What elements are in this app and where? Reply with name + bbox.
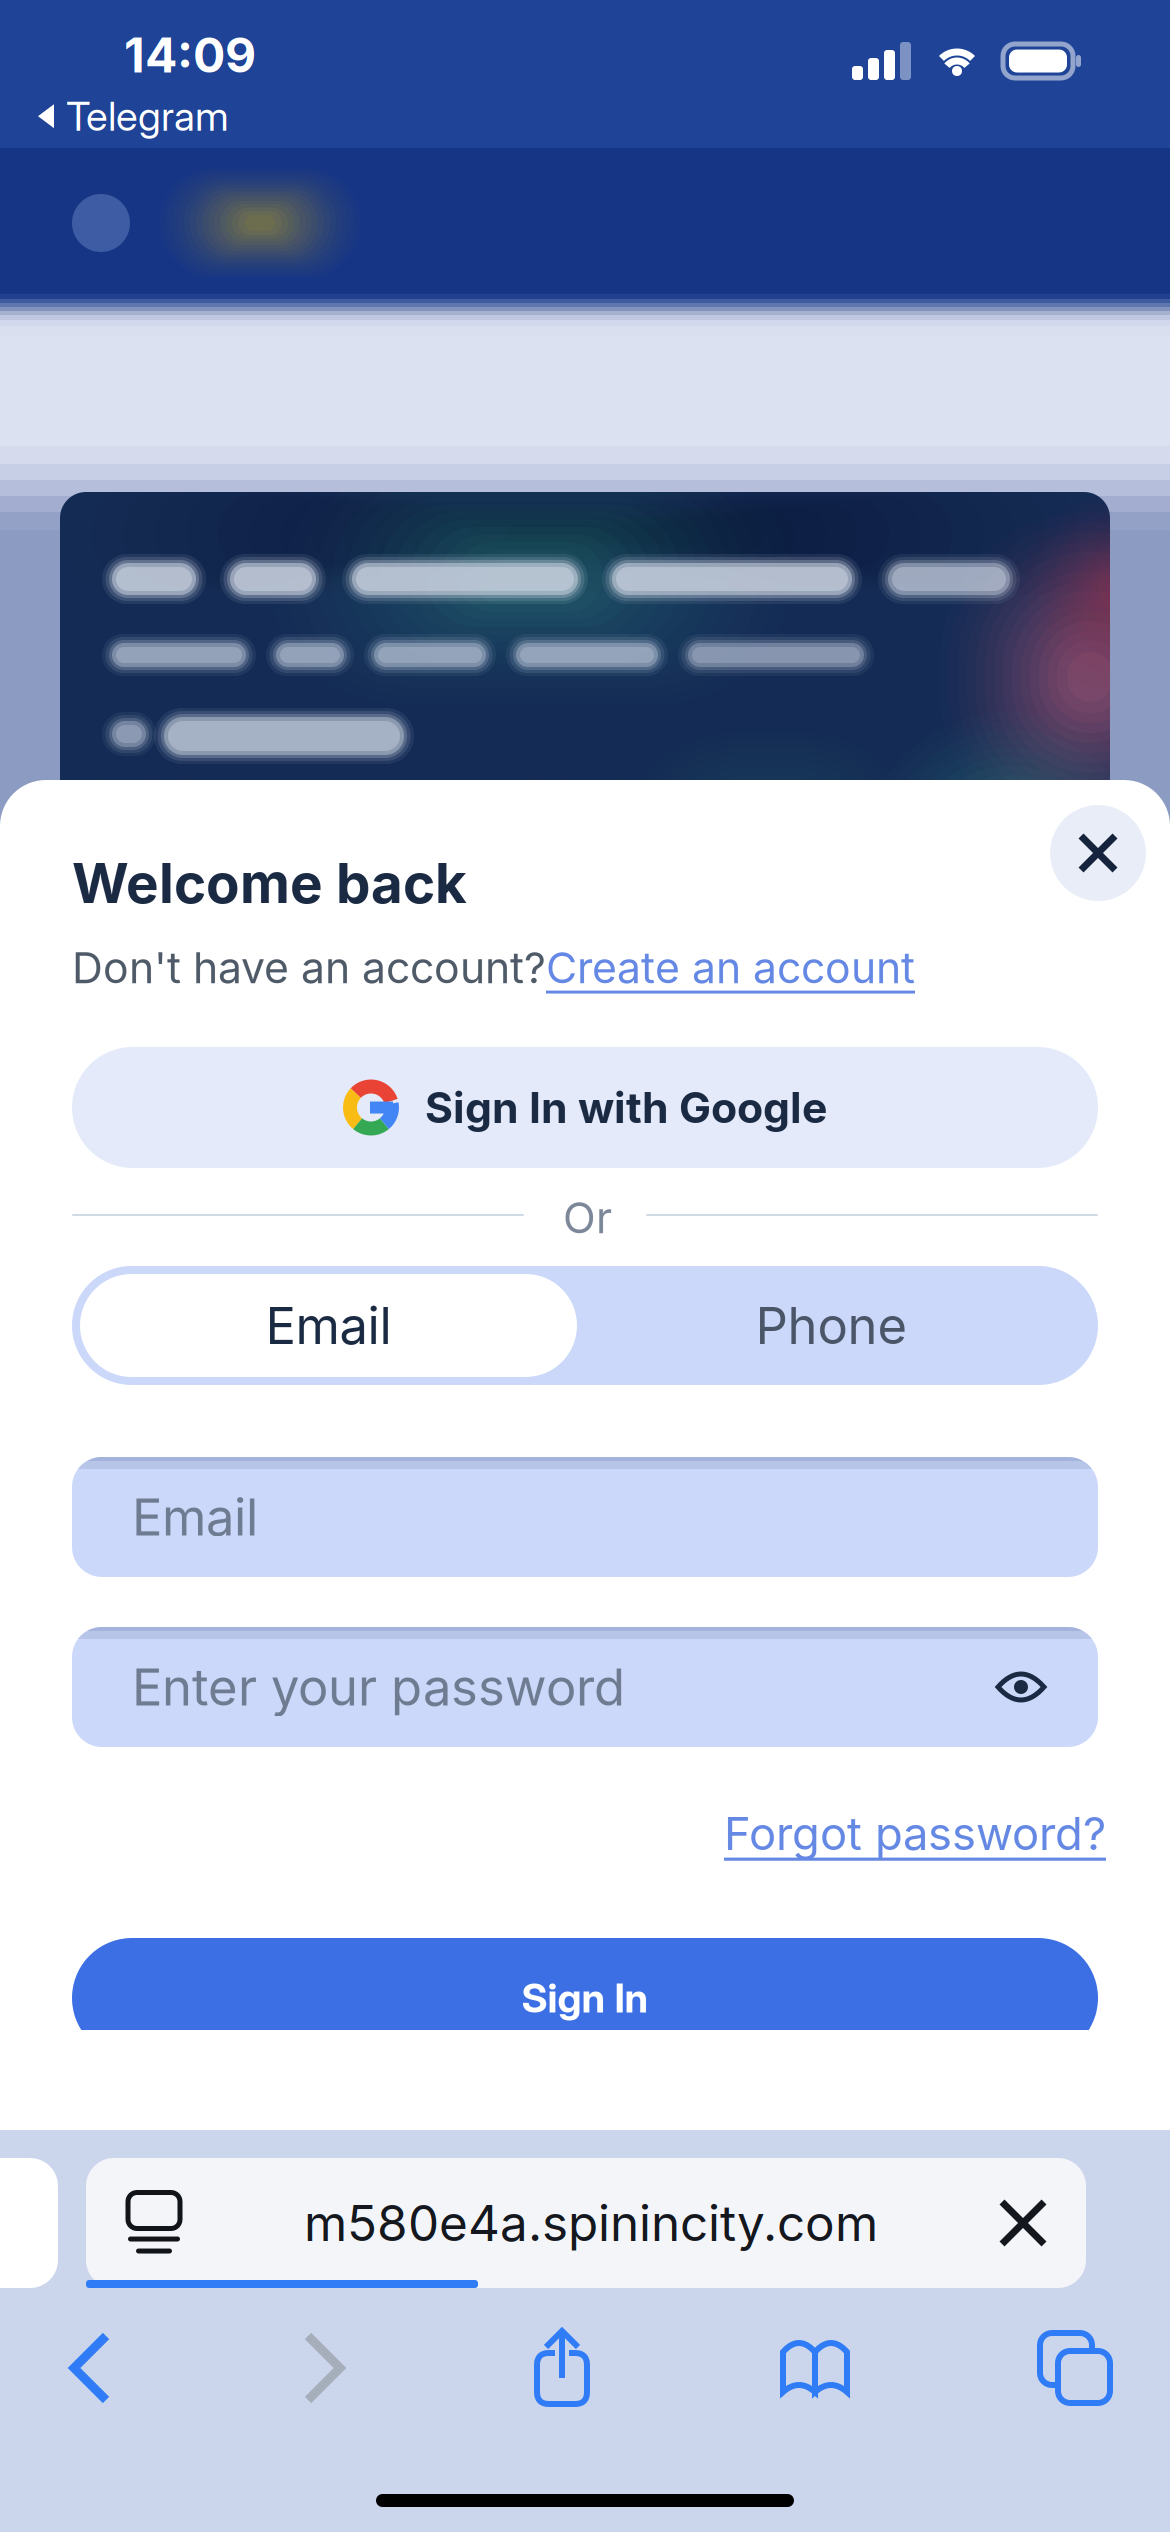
staticText: m580e4a.spinincity.com bbox=[304, 2193, 878, 2253]
button[interactable]: Forward bbox=[302, 2336, 344, 2400]
staticText: Sign In with Google bbox=[425, 1082, 827, 1133]
button[interactable]: Close bbox=[1050, 805, 1146, 901]
staticText: Email bbox=[265, 1295, 391, 1356]
button[interactable]: Create an account bbox=[546, 942, 915, 994]
button[interactable]: Bookmarks bbox=[780, 2338, 850, 2398]
button[interactable]: Stop loading bbox=[1002, 2202, 1044, 2244]
button[interactable]: Share bbox=[534, 2328, 590, 2408]
button[interactable]: Email bbox=[80, 1274, 577, 1377]
staticText: Create an account bbox=[546, 942, 915, 994]
staticText: Phone bbox=[755, 1295, 907, 1356]
button[interactable]: Sign In with Google bbox=[72, 1047, 1098, 1168]
button[interactable]: Show password bbox=[996, 1669, 1046, 1705]
staticText: Forgot password? bbox=[724, 1806, 1106, 1861]
staticText: Enter your password bbox=[132, 1656, 625, 1718]
staticText: Don't have an account? bbox=[72, 942, 546, 994]
button[interactable]: Forgot password? bbox=[724, 1806, 1106, 1861]
button[interactable]: Back bbox=[70, 2336, 112, 2400]
button[interactable]: Phone bbox=[577, 1274, 1086, 1377]
staticText: Email bbox=[132, 1486, 258, 1548]
button[interactable]: Tabs bbox=[1040, 2333, 1110, 2403]
staticText: 14:09 bbox=[124, 26, 256, 84]
button[interactable]: Page settings bbox=[128, 2190, 180, 2255]
staticText: Or bbox=[563, 1192, 612, 1244]
staticText: Telegram bbox=[66, 92, 229, 140]
button[interactable]: Sign In bbox=[72, 1938, 1098, 2058]
staticText: Sign In bbox=[521, 1974, 648, 2022]
staticText: Welcome back bbox=[72, 850, 467, 916]
